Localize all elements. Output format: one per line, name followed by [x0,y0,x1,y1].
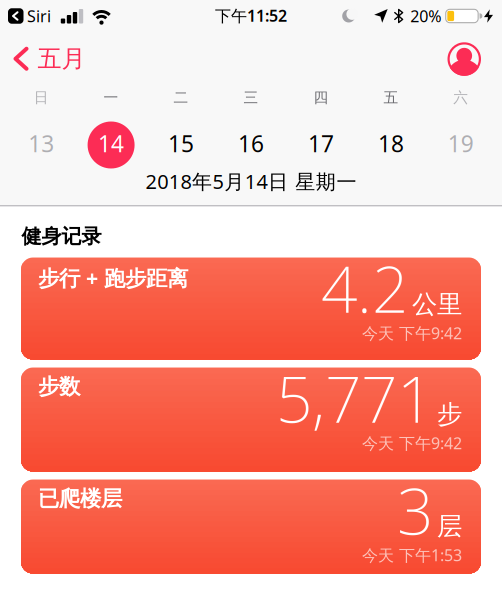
staticText: 二 [173,88,188,106]
staticText: 步 [437,399,462,430]
staticText: 五月 [37,44,85,73]
staticText: 一 [104,88,119,106]
staticText: 健身记录 [21,224,101,249]
button[interactable]: 15 [146,121,216,168]
staticText: 17 [308,128,334,158]
button[interactable]: 16 [216,121,286,168]
button[interactable]: 健康资料 [447,42,481,76]
staticText: 4.2 [321,245,408,330]
staticText: 步数 [38,373,80,400]
staticText: 15 [168,128,194,158]
staticText: 已爬楼层 [38,485,122,512]
button[interactable]: 19 [426,121,496,168]
button[interactable]: 已爬楼层 [21,479,481,573]
staticText: 今天 下午9:42 [362,322,462,344]
staticText: 步行 + 跑步距离 [38,263,188,292]
staticText: 19 [448,128,474,158]
staticText: 13 [28,128,54,158]
staticText: 14 [98,128,124,158]
staticText: 下午11:52 [215,5,287,26]
button[interactable]: 14 [76,121,146,168]
staticText: 日 [34,88,49,106]
staticText: 20% [410,5,441,27]
staticText: Siri [27,5,51,27]
button[interactable]: 步数 [21,367,481,471]
staticText: 5,771 [276,355,433,440]
staticText: 三 [243,88,258,106]
button[interactable]: 17 [286,121,356,168]
button[interactable]: 步行 + 跑步距离 [21,257,481,359]
staticText: 2018年5月14日 星期一 [146,168,356,195]
staticText: 层 [437,511,462,542]
button[interactable]: 18 [356,121,426,168]
staticText: 六 [453,88,468,106]
staticText: 公里 [412,289,462,320]
staticText: 今天 下午9:42 [362,432,462,454]
button[interactable]: 13 [6,121,76,168]
staticText: 今天 下午1:53 [362,544,462,566]
staticText: 18 [378,128,404,158]
staticText: 16 [238,128,264,158]
staticText: 五 [383,88,398,106]
staticText: 四 [313,88,328,106]
staticText: 3 [397,467,433,552]
button[interactable]: 五月 [0,44,85,73]
